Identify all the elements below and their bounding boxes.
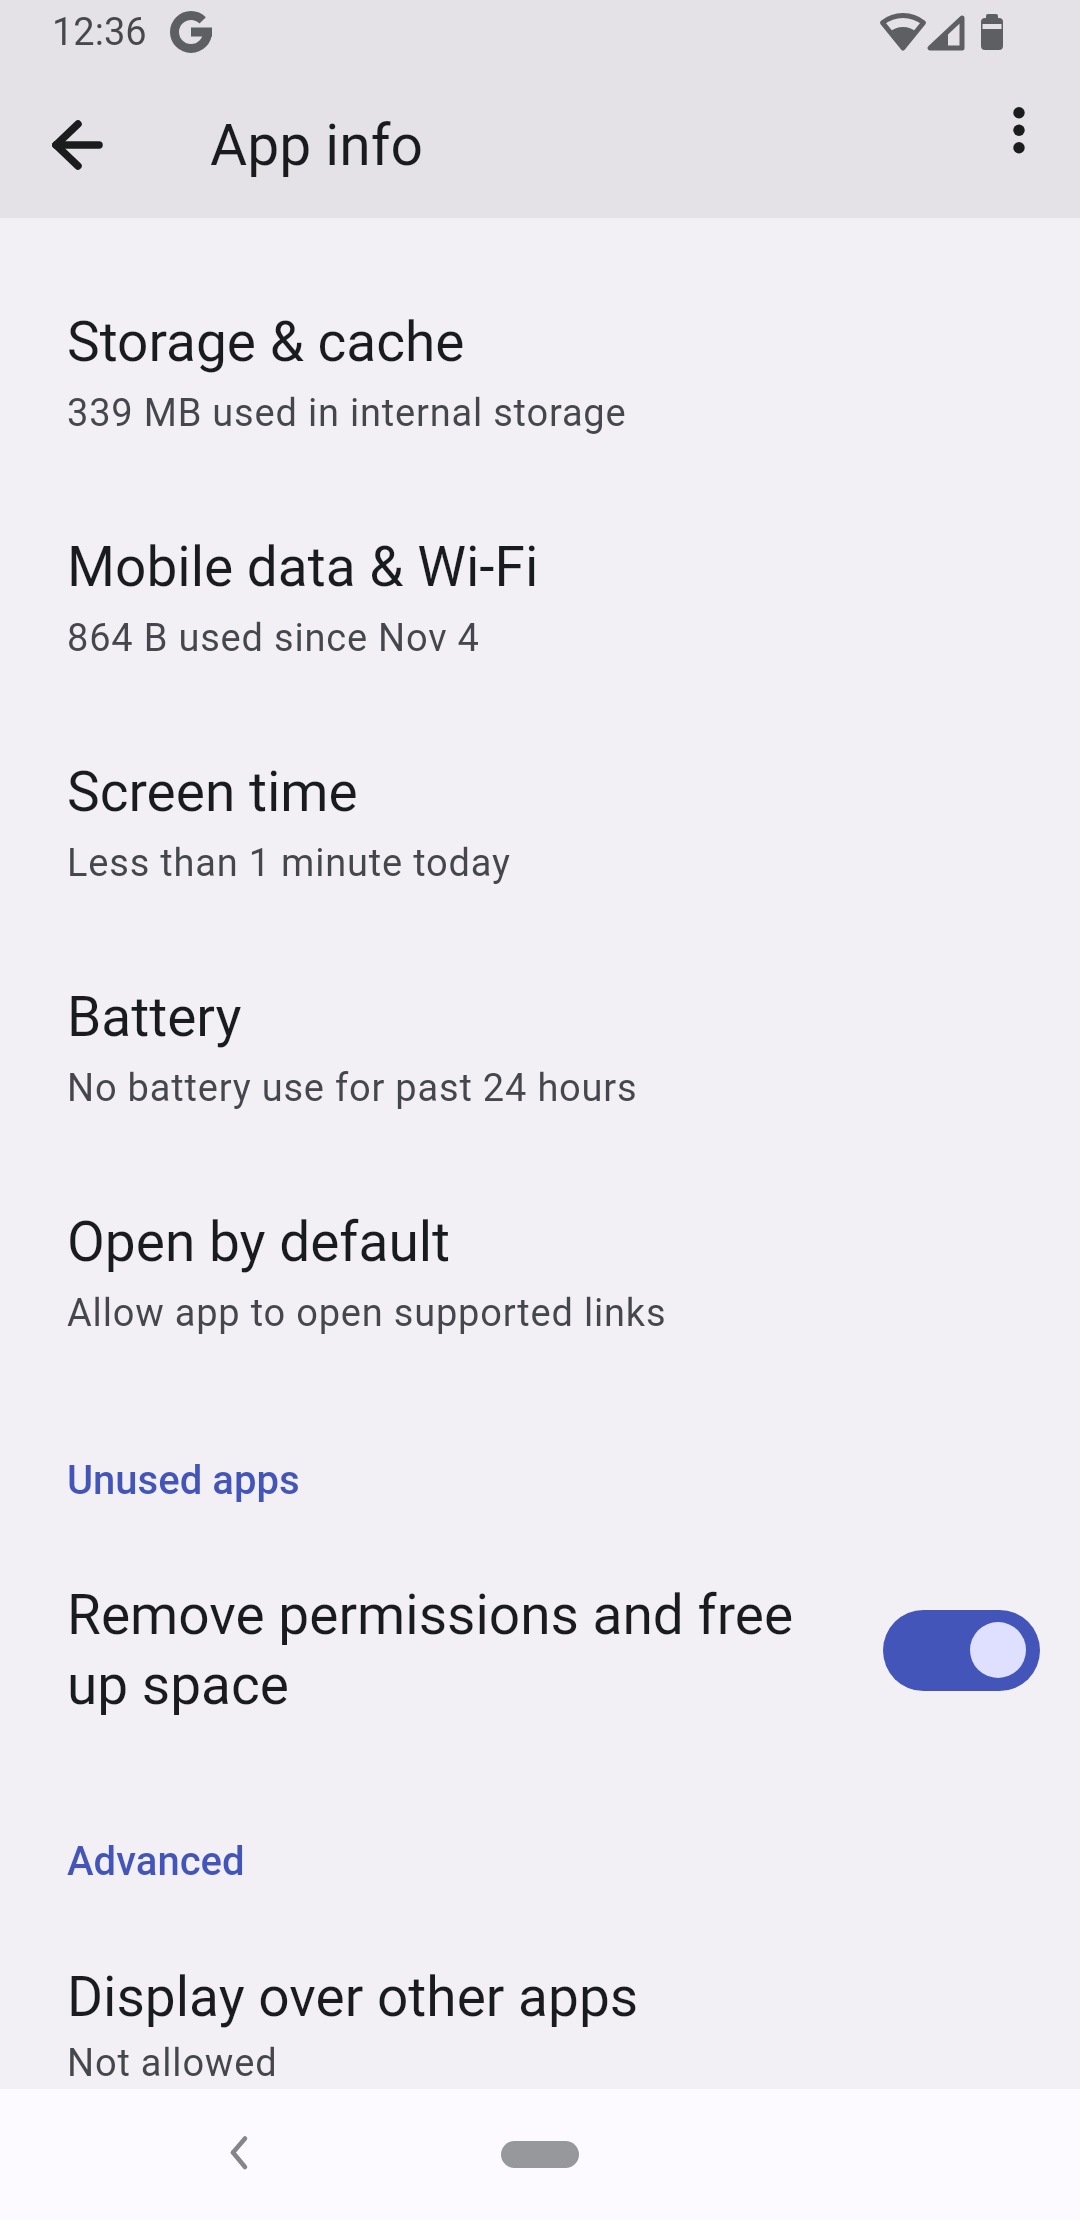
button[interactable] bbox=[979, 103, 1059, 183]
staticText: 12:36 bbox=[52, 10, 147, 55]
button[interactable] bbox=[883, 1610, 1040, 1691]
button[interactable] bbox=[37, 105, 117, 185]
staticText: 339 MB used in internal storage bbox=[67, 391, 627, 436]
button[interactable]: Display over other apps bbox=[0, 1917, 1080, 2089]
staticText: 864 B used since Nov 4 bbox=[67, 616, 480, 661]
staticText: Less than 1 minute today bbox=[67, 841, 511, 886]
staticText: No battery use for past 24 hours bbox=[67, 1066, 638, 1111]
staticText: Storage & cache bbox=[67, 310, 465, 374]
button[interactable]: Screen time bbox=[0, 712, 1080, 924]
staticText: Open by default bbox=[67, 1210, 451, 1274]
staticText: Advanced bbox=[67, 1838, 245, 1885]
button[interactable]: Open by default bbox=[0, 1162, 1080, 1374]
staticText: Remove permissions and free up space bbox=[67, 1583, 867, 1718]
staticText: Allow app to open supported links bbox=[67, 1291, 667, 1336]
staticText: Display over other apps bbox=[67, 1965, 639, 2029]
staticText: Not allowed bbox=[67, 2041, 278, 2086]
button[interactable]: Battery bbox=[0, 937, 1080, 1149]
staticText: App info bbox=[210, 112, 423, 179]
button[interactable]: Mobile data & Wi-Fi bbox=[0, 487, 1080, 699]
staticText: Screen time bbox=[67, 760, 358, 824]
button[interactable] bbox=[501, 2141, 579, 2168]
button[interactable]: Storage & cache bbox=[0, 262, 1080, 474]
staticText: Battery bbox=[67, 985, 242, 1049]
button[interactable]: Remove permissions and free up space bbox=[0, 1560, 1080, 1740]
staticText: Mobile data & Wi-Fi bbox=[67, 535, 539, 599]
button[interactable] bbox=[199, 2113, 279, 2193]
staticText: Unused apps bbox=[67, 1457, 300, 1504]
